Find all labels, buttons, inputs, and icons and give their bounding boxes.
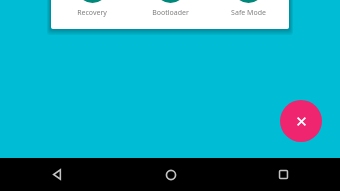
button[interactable]: Home xyxy=(114,158,227,191)
button[interactable]: Close xyxy=(280,100,322,142)
button[interactable]: Recovery xyxy=(57,0,127,18)
staticText: Safe Mode xyxy=(231,8,266,18)
button[interactable]: Back xyxy=(0,158,114,191)
staticText: Recovery xyxy=(77,8,107,18)
staticText: Bootloader xyxy=(152,8,189,18)
button[interactable]: Safe Mode xyxy=(213,0,283,18)
button[interactable]: Recent apps xyxy=(227,158,340,191)
button[interactable]: Bootloader xyxy=(135,0,205,18)
